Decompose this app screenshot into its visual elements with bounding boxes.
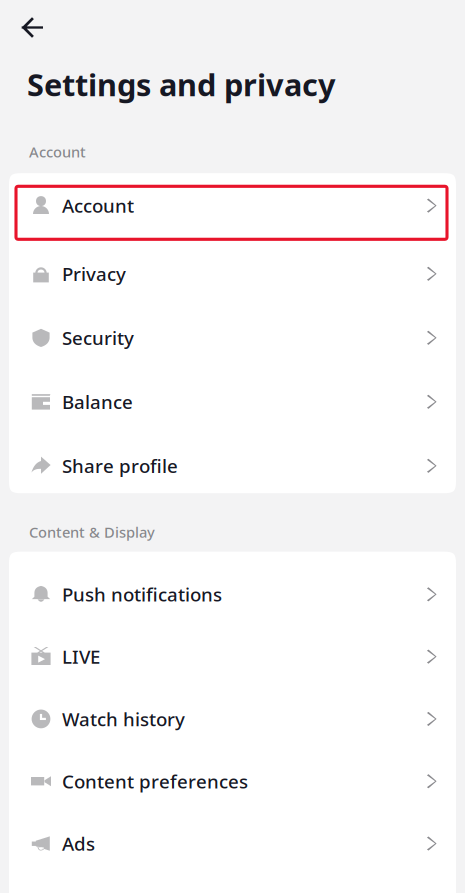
staticText: Account bbox=[29, 142, 86, 162]
button[interactable]: Content preferences bbox=[9, 739, 456, 801]
button[interactable]: Share profile bbox=[9, 431, 456, 495]
button[interactable]: Balance bbox=[9, 367, 456, 431]
button[interactable]: Push notifications bbox=[9, 552, 456, 614]
staticText: Settings and privacy bbox=[27, 64, 336, 105]
staticText: LIVE bbox=[62, 644, 100, 669]
button[interactable]: Security bbox=[9, 303, 456, 367]
staticText: Privacy bbox=[62, 261, 126, 286]
button[interactable]: Ads bbox=[9, 801, 456, 863]
staticText: Ads bbox=[62, 831, 95, 856]
button[interactable]: Watch history bbox=[9, 676, 456, 739]
staticText: Account bbox=[62, 193, 134, 218]
button[interactable]: LIVE bbox=[9, 614, 456, 676]
button[interactable]: Privacy bbox=[9, 239, 456, 303]
button[interactable]: Account bbox=[9, 171, 456, 235]
staticText: Balance bbox=[62, 389, 133, 414]
staticText: Content & Display bbox=[29, 522, 155, 542]
staticText: Share profile bbox=[62, 453, 178, 478]
staticText: Push notifications bbox=[62, 582, 222, 607]
staticText: Security bbox=[62, 325, 134, 350]
button[interactable]: Back bbox=[0, 0, 61, 64]
staticText: Watch history bbox=[62, 706, 185, 731]
staticText: Content preferences bbox=[62, 769, 248, 794]
